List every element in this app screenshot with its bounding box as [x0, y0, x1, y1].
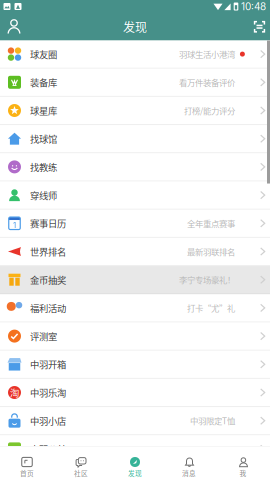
staticText: 世界排名 — [30, 245, 66, 258]
button[interactable]: 1 — [0, 210, 270, 238]
staticText: 装备库 — [30, 75, 57, 89]
staticText: 打榜/能力评分 — [184, 104, 235, 117]
staticText: 全年重点赛事 — [187, 217, 235, 229]
button[interactable]: 首页 — [0, 446, 54, 480]
button[interactable]: 我 — [216, 446, 270, 480]
button[interactable]: 发现 — [108, 446, 162, 480]
button[interactable]: 球友圈 — [0, 40, 270, 69]
staticText: 发现 — [128, 468, 142, 478]
staticText: 我 — [239, 468, 246, 478]
staticText: 中羽开箱 — [30, 357, 66, 371]
staticText: 评测室 — [30, 329, 57, 343]
staticText: 中羽小店 — [30, 414, 66, 427]
staticText: 中羽公益 — [30, 442, 66, 456]
staticText: 发现 — [123, 18, 147, 35]
button[interactable]: 球星库 — [0, 97, 270, 125]
button[interactable]: Profile — [0, 13, 27, 40]
staticText: 金币抽奖 — [30, 273, 66, 286]
staticText: 淘 — [10, 386, 19, 399]
staticText: 赛事日历 — [30, 216, 66, 230]
staticText: 中羽限定T恤 — [190, 415, 235, 427]
button[interactable]: 金币抽奖 — [0, 266, 270, 294]
button[interactable]: 福利活动 — [0, 294, 270, 322]
staticText: 打卡“尤”礼 — [187, 302, 235, 314]
button[interactable]: 社区 — [54, 446, 108, 480]
staticText: 穿线师 — [30, 188, 57, 202]
staticText: 找球馆 — [30, 132, 57, 145]
staticText: 社区 — [74, 468, 88, 478]
button[interactable]: 中羽公益 — [0, 435, 270, 463]
button[interactable]: 淘 — [0, 379, 270, 407]
button[interactable]: 世界排名 — [0, 238, 270, 266]
button[interactable]: 中羽开箱 — [0, 351, 270, 379]
staticText: 找教练 — [30, 160, 57, 174]
staticText: 看万件装备评价 — [179, 76, 235, 88]
staticText: 最新羽联排名 — [187, 245, 235, 258]
button[interactable]: 装备库 — [0, 69, 270, 97]
button[interactable]: Scan QR code — [246, 13, 270, 40]
button[interactable]: 找球馆 — [0, 125, 270, 153]
staticText: 中羽乐淘 — [30, 386, 66, 399]
staticText: 10:48 — [241, 0, 266, 13]
button[interactable]: 穿线师 — [0, 181, 270, 210]
button[interactable]: 消息 — [162, 446, 216, 480]
staticText: 1 — [13, 220, 16, 230]
staticText: 福利活动 — [30, 301, 66, 315]
staticText: 羽球生活小港湾 — [179, 48, 235, 60]
button[interactable]: 找教练 — [0, 153, 270, 181]
button[interactable]: 中羽小店 — [0, 407, 270, 435]
button[interactable]: 评测室 — [0, 322, 270, 351]
staticText: 球友圈 — [30, 47, 57, 61]
staticText: 球星库 — [30, 104, 57, 117]
staticText: 消息 — [182, 468, 196, 478]
staticText: 首页 — [20, 468, 34, 478]
staticText: 李宁专场豪礼！ — [179, 274, 235, 286]
